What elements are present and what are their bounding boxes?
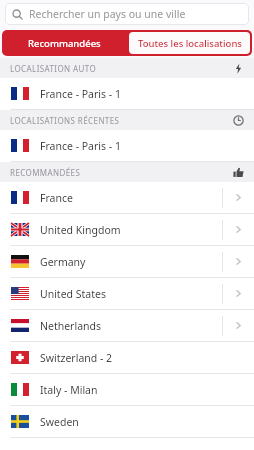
staticText: Italy - Milan bbox=[40, 383, 98, 397]
staticText: France - Paris - 1 bbox=[40, 87, 121, 101]
staticText: RECOMMANDÉES bbox=[10, 167, 81, 178]
staticText: Germany bbox=[40, 255, 86, 269]
button[interactable]: France bbox=[0, 182, 254, 213]
staticText: Toutes les localisations bbox=[138, 37, 242, 50]
button[interactable]: United States bbox=[0, 278, 254, 309]
button[interactable]: Netherlands bbox=[0, 310, 254, 341]
staticText: United Kingdom bbox=[40, 223, 121, 237]
staticText: LOCALISATIONS RÉCENTES bbox=[10, 115, 120, 126]
button[interactable]: Italy - Milan bbox=[0, 374, 254, 405]
staticText: Recommandées bbox=[28, 37, 101, 50]
button[interactable]: Open United Kingdom bbox=[223, 214, 254, 245]
staticText: France bbox=[40, 191, 73, 205]
staticText: France - Paris - 1 bbox=[40, 139, 121, 153]
button[interactable]: Open United States bbox=[223, 278, 254, 309]
staticText: Netherlands bbox=[40, 319, 102, 333]
button[interactable]: Switzerland - 2 bbox=[0, 342, 254, 373]
button[interactable]: Germany bbox=[0, 246, 254, 277]
button[interactable]: United Kingdom bbox=[0, 214, 254, 245]
button[interactable]: Open Netherlands bbox=[223, 310, 254, 341]
button[interactable]: Toutes les localisations bbox=[129, 32, 250, 54]
button[interactable]: France - Paris - 1 bbox=[0, 130, 254, 161]
staticText: LOCALISATION AUTO bbox=[10, 63, 97, 74]
button[interactable]: Rechercher un pays ou une ville bbox=[5, 3, 249, 25]
staticText: United States bbox=[40, 287, 106, 301]
staticText: Switzerland - 2 bbox=[40, 351, 113, 365]
button[interactable]: Sweden bbox=[0, 406, 254, 437]
staticText: Rechercher un pays ou une ville bbox=[29, 7, 186, 21]
staticText: Sweden bbox=[40, 415, 79, 429]
button[interactable]: Open France bbox=[223, 182, 254, 213]
button[interactable]: Open Germany bbox=[223, 246, 254, 277]
button[interactable]: France - Paris - 1 bbox=[0, 78, 254, 109]
button[interactable]: Recommandées bbox=[2, 30, 127, 56]
